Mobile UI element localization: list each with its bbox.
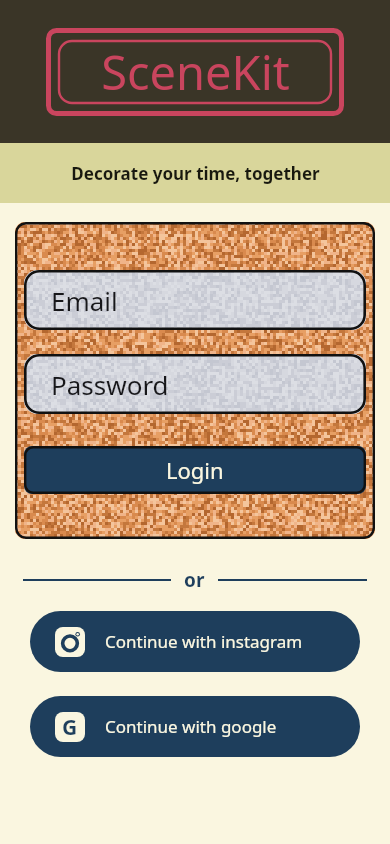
staticText: SceneKit	[101, 40, 290, 104]
button[interactable]: Password	[24, 354, 366, 414]
button[interactable]: Login	[24, 446, 366, 494]
staticText: or	[184, 567, 205, 593]
button[interactable]: Instagram	[30, 611, 360, 672]
staticText: Decorate your time, together	[71, 162, 320, 185]
button[interactable]: Email	[24, 270, 366, 330]
button[interactable]: Google	[30, 696, 360, 757]
staticText: Login	[166, 455, 224, 485]
other: Instagram	[55, 627, 85, 657]
other: Google	[55, 712, 85, 742]
staticText: G	[62, 713, 78, 742]
staticText: Continue with google	[105, 715, 277, 738]
staticText: Email	[51, 283, 118, 318]
staticText: Continue with instagram	[105, 630, 303, 653]
staticText: Password	[51, 367, 169, 402]
